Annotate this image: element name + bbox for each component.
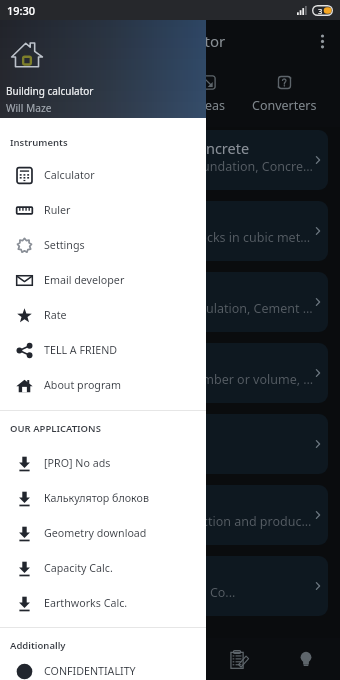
staticText: OUR APPLICATIONS [10, 422, 101, 435]
button[interactable]: Volumes [94, 62, 170, 127]
button[interactable]: Section and producti... [12, 485, 328, 545]
staticText: Instruments [10, 136, 68, 149]
staticText: Rate [44, 308, 67, 323]
button[interactable]: Areas [170, 62, 246, 127]
button[interactable]: TELL A FRIEND [0, 333, 206, 368]
staticText: Building calculator [94, 31, 226, 51]
button[interactable]: More options [304, 20, 340, 62]
staticText: Additionally [10, 639, 66, 652]
button[interactable]: Rate [0, 298, 206, 333]
staticText: Email developer [44, 273, 125, 288]
button[interactable]: Tips [272, 638, 340, 680]
staticText: CONFIDENTIALITY [44, 664, 136, 679]
staticText: [PRO] No ads [44, 456, 111, 471]
staticText: Ruler [44, 203, 71, 218]
staticText: About program [44, 378, 122, 393]
button[interactable]: Converters [246, 62, 322, 127]
staticText: Lumber or volume, Lu... [188, 371, 314, 388]
button[interactable]: Concrete [12, 130, 328, 190]
staticText: on, Co... [188, 584, 236, 601]
button[interactable]: About program [0, 368, 206, 403]
staticText: Settings [44, 238, 85, 253]
staticText: Volumes [107, 97, 158, 114]
staticText: 19:30 [7, 3, 36, 18]
button[interactable]: Ruler [0, 193, 206, 228]
button[interactable] [12, 414, 328, 474]
button[interactable]: Settings [0, 228, 206, 263]
button[interactable]: Notes [204, 638, 272, 680]
button[interactable]: Insulation, Cement s... [12, 272, 328, 332]
button[interactable]: CONFIDENTIALITY [0, 663, 206, 680]
button[interactable]: Blocks in cubic meter.... [12, 201, 328, 261]
staticText: Calculator [44, 168, 95, 183]
staticText: Insulation, Cement s... [188, 300, 314, 317]
button[interactable]: Calculator [0, 158, 206, 193]
staticText: Калькулятор блоков [44, 491, 149, 506]
staticText: Building calculator [6, 84, 94, 98]
staticText: Geometry download [44, 526, 147, 541]
staticText: 3 [318, 6, 323, 16]
button[interactable]: Email developer [0, 263, 206, 298]
button[interactable]: Ruler [68, 638, 136, 680]
button[interactable]: Lumber or volume, Lu... [12, 343, 328, 403]
staticText: Concrete [188, 138, 250, 158]
staticText: Will Maze [6, 101, 52, 115]
staticText: Foundation, Concrete ... [188, 158, 314, 175]
button[interactable]: Калькулятор блоков [0, 481, 206, 516]
button[interactable]: on, Co... [12, 556, 328, 616]
button[interactable]: Calculator [0, 638, 68, 680]
button[interactable]: Capacity Calc. [0, 551, 206, 586]
staticText: Capacity Calc. [44, 561, 113, 576]
staticText: Section and producti... [188, 513, 314, 530]
button[interactable]: Earthworks Calc. [0, 586, 206, 621]
staticText: TELL A FRIEND [44, 343, 118, 358]
button[interactable]: Geometry download [0, 516, 206, 551]
button[interactable]: [PRO] No ads [0, 446, 206, 481]
staticText: Converters [252, 97, 317, 114]
staticText: Blocks in cubic meter.... [188, 229, 314, 246]
staticText: Areas [192, 97, 225, 114]
staticText: Earthworks Calc. [44, 596, 128, 611]
